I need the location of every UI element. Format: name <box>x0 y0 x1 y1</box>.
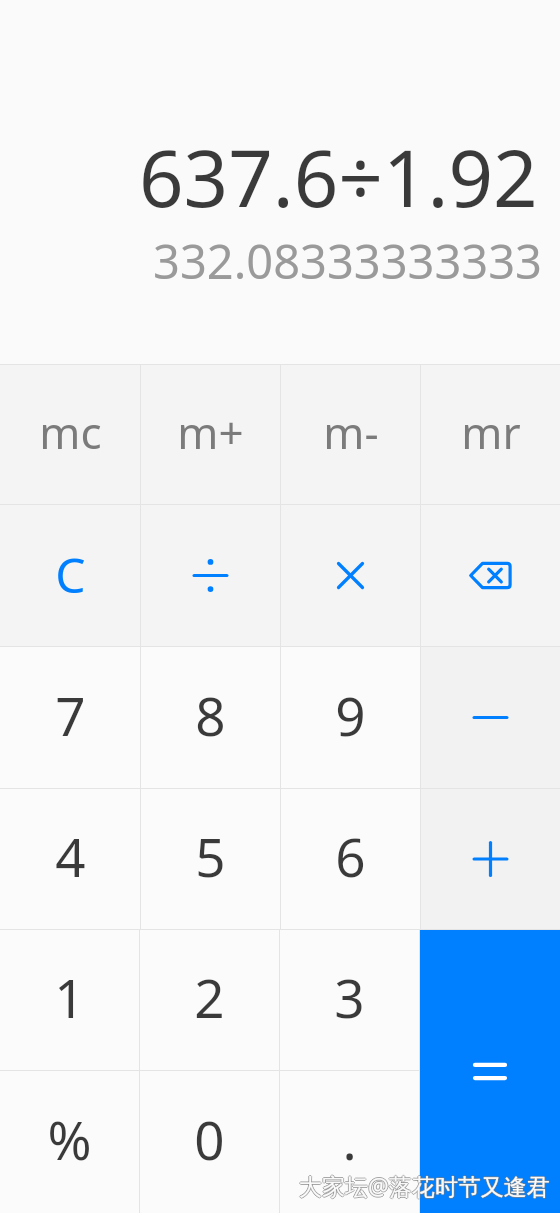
button[interactable]: 3 <box>280 930 419 1070</box>
staticText: m+ <box>177 402 244 462</box>
button[interactable]: Minus <box>421 647 560 788</box>
staticText: . <box>342 1103 357 1175</box>
button[interactable]: Multiply <box>281 505 420 646</box>
button[interactable]: 9 <box>281 647 420 788</box>
staticText: 大家坛@落花时节又逢君 <box>299 1169 550 1200</box>
button[interactable]: mc <box>0 365 140 504</box>
button[interactable]: Plus <box>421 789 560 929</box>
button[interactable]: 0 <box>140 1071 279 1213</box>
button[interactable]: 5 <box>141 789 280 929</box>
button[interactable]: 2 <box>140 930 279 1070</box>
button[interactable]: m+ <box>141 365 280 504</box>
staticText: mr <box>461 402 521 462</box>
button[interactable]: C <box>0 505 140 646</box>
staticText: C <box>55 542 86 607</box>
staticText: 332.08333333333 <box>153 229 542 293</box>
staticText: 大家坛@落花时节又逢君 <box>298 1170 549 1201</box>
staticText: 8 <box>195 679 226 751</box>
button[interactable]: Backspace <box>421 505 560 646</box>
staticText: 1 <box>54 961 85 1033</box>
button[interactable]: 6 <box>281 789 420 929</box>
staticText: 5 <box>195 820 226 892</box>
staticText: 大家坛@落花时节又逢君 <box>299 1171 550 1202</box>
button[interactable]: 7 <box>0 647 140 788</box>
button[interactable]: Equals <box>420 930 560 1213</box>
button[interactable]: mr <box>421 365 560 504</box>
staticText: 9 <box>335 679 366 751</box>
button[interactable]: 1 <box>0 930 139 1070</box>
staticText: 2 <box>194 961 225 1033</box>
staticText: mc <box>39 402 102 462</box>
button[interactable]: 8 <box>141 647 280 788</box>
staticText: 6 <box>335 820 366 892</box>
staticText: 3 <box>334 961 365 1033</box>
button[interactable]: 4 <box>0 789 140 929</box>
button[interactable]: % <box>0 1071 139 1213</box>
staticText: 637.6÷1.92 <box>139 124 538 230</box>
staticText: % <box>47 1103 92 1175</box>
staticText: 0 <box>194 1103 225 1175</box>
button[interactable]: m- <box>281 365 420 504</box>
staticText: 4 <box>55 820 86 892</box>
staticText: 大家坛@落花时节又逢君 <box>300 1170 551 1201</box>
staticText: 大家坛@落花时节又逢君 <box>299 1170 550 1201</box>
staticText: 7 <box>55 679 86 751</box>
button[interactable]: Divide <box>141 505 280 646</box>
staticText: m- <box>323 402 379 462</box>
button[interactable]: . <box>280 1071 419 1213</box>
